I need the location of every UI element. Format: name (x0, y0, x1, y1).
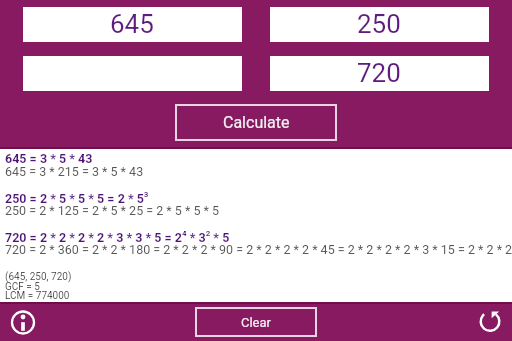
button[interactable]: Info (6, 306, 40, 340)
staticText: 645 = 3 * 215 = 3 * 5 * 43 (5, 164, 512, 179)
button[interactable]: 645 (23, 7, 242, 42)
staticText: Calculate (223, 113, 290, 132)
staticText: Clear (241, 315, 271, 330)
button[interactable]: Reset (473, 306, 507, 340)
staticText: 250 (357, 9, 401, 39)
staticText: 720 = 2 * 2 * 2 * 2 * 3 * 3 * 5 = 24 * 3… (5, 229, 512, 245)
button[interactable]: Calculate (175, 104, 337, 141)
staticText: 645 (110, 9, 154, 39)
staticText: GCF = 5 (5, 281, 40, 293)
staticText: LCM = 774000 (5, 290, 70, 302)
staticText: 250 = 2 * 125 = 2 * 5 * 25 = 2 * 5 * 5 *… (5, 203, 512, 218)
staticText: 250 = 2 * 5 * 5 * 5 = 2 * 53 (5, 190, 512, 206)
button[interactable]: 720 (270, 56, 489, 91)
staticText: 645 = 3 * 5 * 43 (5, 151, 512, 166)
staticText: 720 = 2 * 360 = 2 * 2 * 180 = 2 * 2 * 2 … (5, 242, 512, 257)
staticText: (645, 250, 720) (5, 271, 72, 283)
button[interactable]: Clear (195, 307, 317, 337)
staticText: 720 (357, 58, 401, 88)
button[interactable]: 250 (270, 7, 489, 42)
